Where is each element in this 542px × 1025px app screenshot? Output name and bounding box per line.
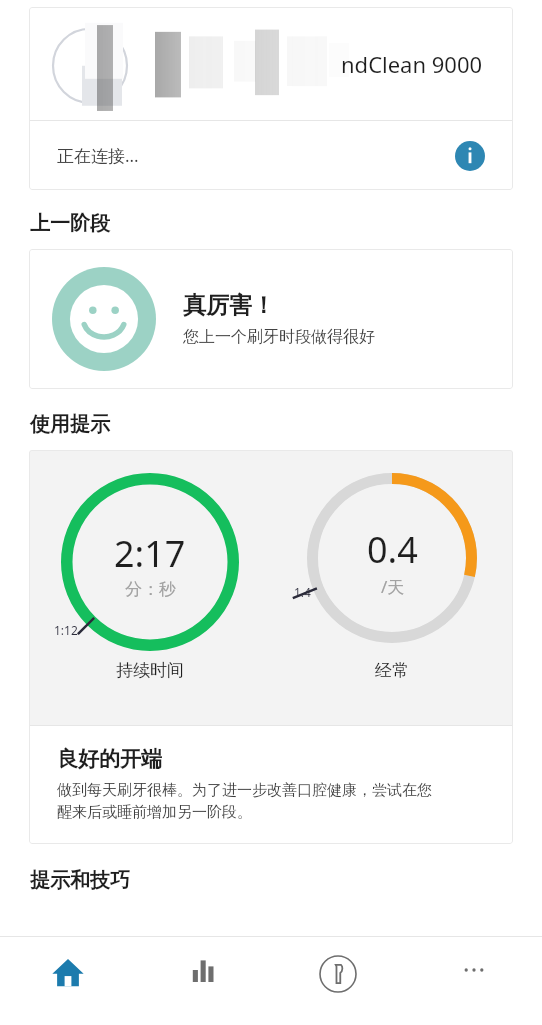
button[interactable]: Statistics — [135, 937, 270, 1025]
button[interactable]: 正在连接... — [29, 121, 513, 190]
button[interactable]: Home — [0, 937, 135, 1025]
button[interactable]: More — [406, 937, 542, 1025]
staticText: 您上一个刷牙时段做得很好 — [183, 327, 375, 347]
staticText: 经常 — [375, 660, 409, 681]
staticText: 真厉害！ — [183, 291, 275, 320]
button[interactable]: Information — [453, 139, 487, 173]
button[interactable]: ndClean 9000 — [29, 7, 513, 190]
staticText: 上一阶段 — [30, 211, 110, 236]
staticText: 使用提示 — [30, 412, 110, 437]
staticText: 良好的开端 — [57, 746, 162, 772]
staticText: 1.4 — [294, 584, 311, 600]
staticText: 0.4 — [367, 525, 418, 574]
staticText: /天 — [381, 575, 405, 598]
button[interactable]: 真厉害！ — [29, 249, 513, 389]
button[interactable]: 2:17 — [29, 450, 513, 844]
staticText: 1:12 — [54, 622, 78, 638]
staticText: 持续时间 — [116, 660, 184, 681]
staticText: 提示和技巧 — [30, 868, 130, 893]
staticText: 分：秒 — [125, 579, 176, 600]
staticText: 2:17 — [114, 529, 186, 578]
staticText: 正在连接... — [57, 144, 453, 167]
button[interactable]: Brush — [270, 937, 406, 1025]
staticText: ndClean 9000 — [341, 49, 483, 79]
staticText: 做到每天刷牙很棒。为了进一步改善口腔健康，尝试在您 醒来后或睡前增加另一阶段。 — [57, 781, 432, 822]
